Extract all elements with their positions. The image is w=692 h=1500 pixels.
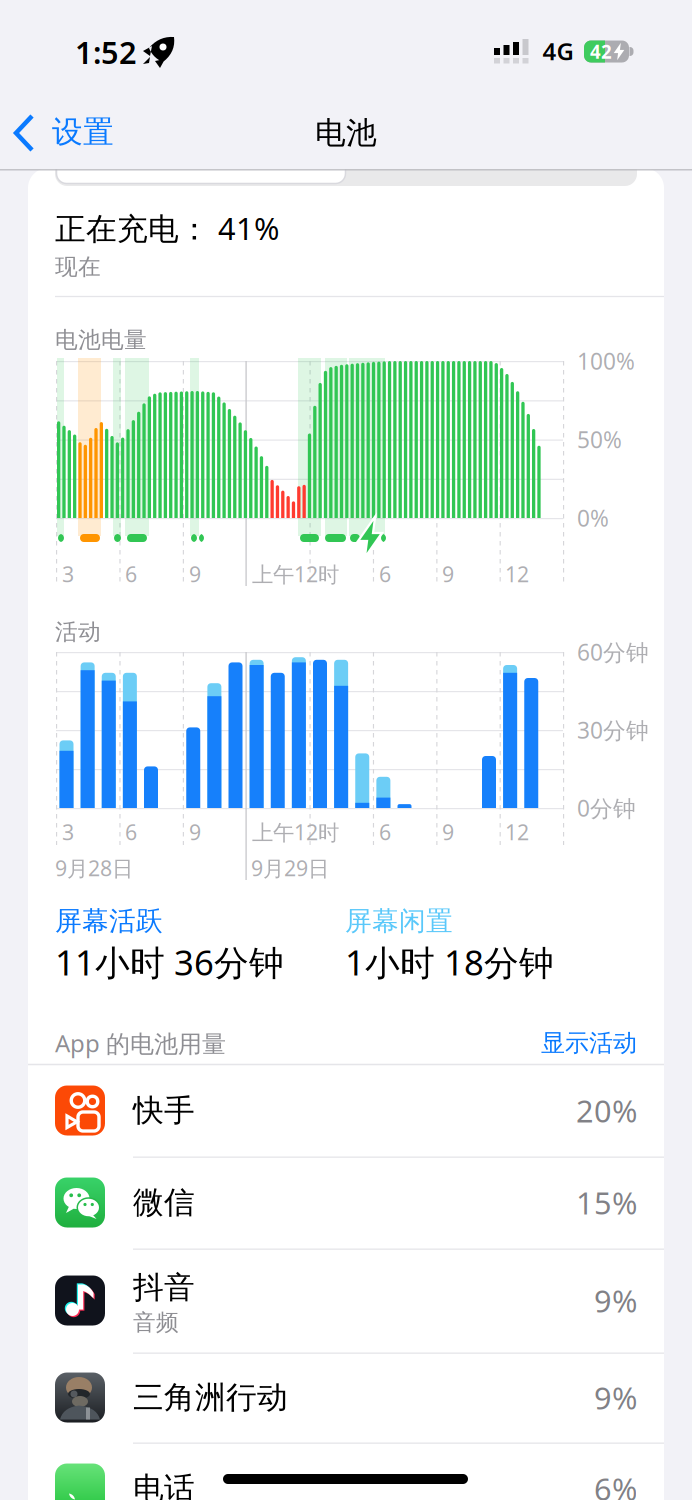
staticText: 4G — [542, 35, 573, 67]
staticText: 屏幕闲置 — [345, 905, 453, 937]
staticText: 上午12时 — [252, 818, 339, 846]
staticText: 9 — [189, 818, 201, 846]
button[interactable] — [56, 168, 345, 183]
staticText: 11小时 36分钟 — [55, 939, 284, 985]
button[interactable]: 电话 — [28, 1442, 664, 1500]
staticText: 6 — [379, 818, 391, 846]
staticText: 电话 — [133, 1470, 195, 1500]
staticText: 正在充电： 41% — [55, 208, 279, 248]
staticText: 6% — [594, 1468, 637, 1500]
staticText: 0% — [577, 503, 609, 533]
staticText: 现在 — [55, 253, 101, 281]
staticText: 电池 — [315, 114, 377, 152]
staticText: 42 — [590, 39, 612, 64]
staticText: 12 — [505, 560, 529, 588]
button[interactable] — [55, 168, 637, 186]
button[interactable]: 抖音 — [28, 1248, 664, 1352]
staticText: 12 — [505, 818, 529, 846]
staticText: 0分钟 — [577, 793, 636, 823]
staticText: 音频 — [133, 1309, 179, 1336]
button[interactable]: 三角洲行动 — [28, 1352, 664, 1442]
staticText: 三角洲行动 — [133, 1379, 288, 1416]
staticText: 30分钟 — [577, 715, 649, 745]
staticText: 6 — [125, 560, 137, 588]
staticText: 显示活动 — [541, 1028, 637, 1058]
staticText: 50% — [577, 424, 622, 454]
staticText: 微信 — [133, 1184, 195, 1221]
staticText: App 的电池用量 — [55, 1027, 226, 1059]
staticText: 9月29日 — [251, 854, 329, 882]
staticText: 9% — [594, 1280, 637, 1321]
staticText: 3 — [62, 818, 74, 846]
staticText: 1小时 18分钟 — [345, 939, 554, 985]
staticText: 9 — [442, 560, 454, 588]
button[interactable]: 显示活动 — [541, 1028, 637, 1058]
staticText: 1:52 — [75, 32, 137, 72]
staticText: 电池电量 — [55, 326, 147, 354]
staticText: 抖音 — [133, 1269, 195, 1306]
staticText: 100% — [577, 346, 635, 376]
staticText: 15% — [576, 1182, 637, 1223]
staticText: 设置 — [52, 113, 114, 151]
staticText: 9% — [594, 1377, 637, 1418]
button[interactable]: 设置 — [8, 109, 123, 157]
staticText: 上午12时 — [252, 560, 339, 588]
staticText: 9 — [442, 818, 454, 846]
staticText: 屏幕活跃 — [55, 905, 163, 937]
staticText: 9月28日 — [55, 854, 133, 882]
staticText: 3 — [62, 560, 74, 588]
button[interactable]: 微信 — [28, 1156, 664, 1248]
staticText: 20% — [576, 1090, 637, 1131]
staticText: 6 — [379, 560, 391, 588]
staticText: 活动 — [55, 618, 101, 646]
staticText: 9 — [189, 560, 201, 588]
button[interactable]: 快手 — [28, 1064, 664, 1156]
staticText: 6 — [125, 818, 137, 846]
staticText: 60分钟 — [577, 637, 649, 667]
staticText: 快手 — [133, 1092, 195, 1129]
